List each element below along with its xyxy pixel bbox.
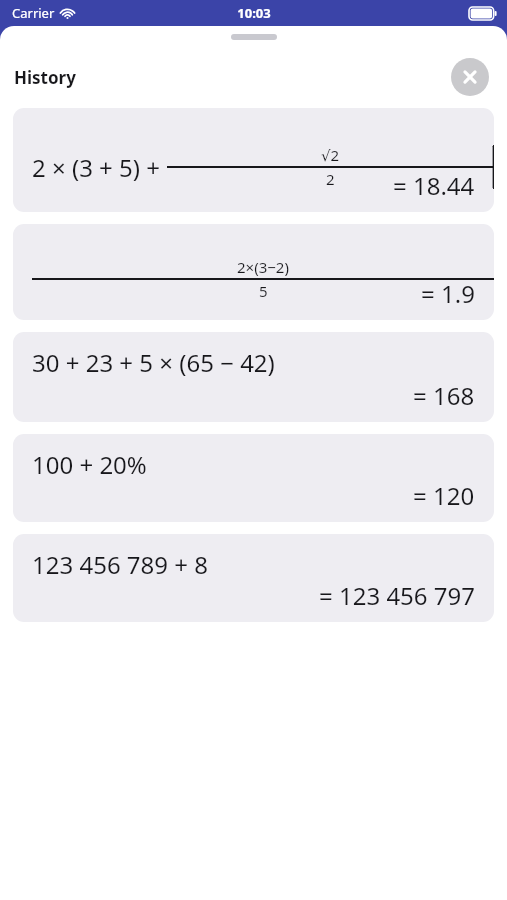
staticText: History <box>14 66 76 89</box>
staticText: = 120 <box>413 479 475 512</box>
staticText: 2 <box>326 169 335 189</box>
staticText: √2 <box>321 145 340 165</box>
staticText: 10:03 <box>237 4 271 22</box>
staticText: Carrier <box>12 4 55 22</box>
staticText: = 18.44 <box>393 169 475 202</box>
staticText: 30 + 23 + 5 × (65 − 42) <box>32 346 275 379</box>
staticText: = 168 <box>413 379 475 412</box>
staticText: 2 × (3 + 5) + <box>32 151 167 184</box>
button[interactable]: 2×(3−2) <box>13 224 494 320</box>
button[interactable]: 100 + 20% <box>13 434 494 522</box>
staticText: 100 + 20% <box>32 448 147 481</box>
staticText: = 123 456 797 <box>319 579 475 612</box>
button[interactable]: 30 + 23 + 5 × (65 − 42) <box>13 332 494 422</box>
button[interactable]: 123 456 789 + 8 <box>13 534 494 622</box>
staticText: 2×(3−2) <box>237 257 289 277</box>
button[interactable]: Close <box>451 58 489 96</box>
staticText: = 1.9 <box>421 277 475 310</box>
staticText: 5 <box>259 281 268 301</box>
staticText: 123 456 789 + 8 <box>32 548 208 581</box>
button[interactable]: 2 × (3 + 5) + <box>13 108 494 212</box>
